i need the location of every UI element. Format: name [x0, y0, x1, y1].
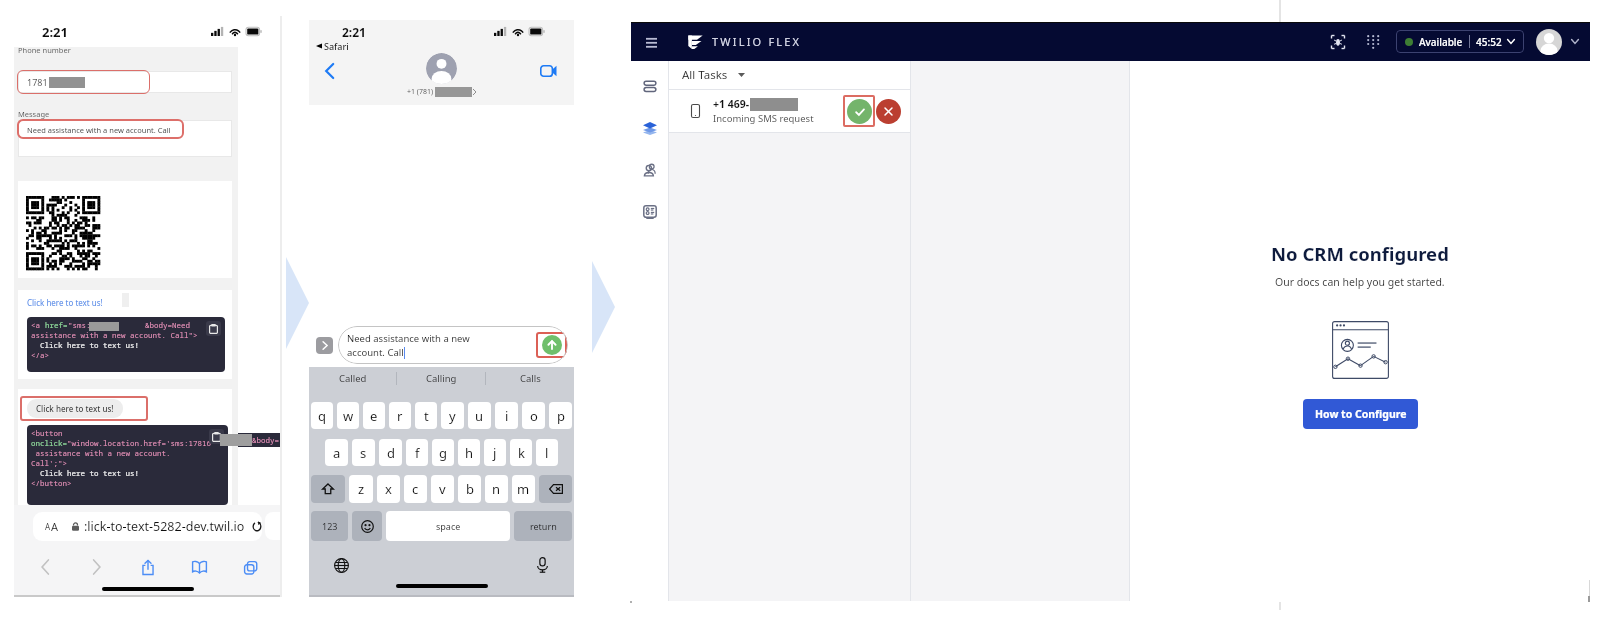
- button[interactable]: Copy: [206, 321, 221, 336]
- button[interactable]: d: [379, 439, 402, 466]
- button[interactable]: Accept task: [847, 99, 872, 124]
- staticText: c: [412, 480, 419, 498]
- button[interactable]: Apps: [316, 337, 333, 354]
- button[interactable]: Reject task: [876, 99, 901, 124]
- button[interactable]: 123: [311, 511, 348, 541]
- staticText: 45:52: [1476, 35, 1502, 49]
- button[interactable]: Back: [34, 557, 56, 577]
- staticText: q: [318, 407, 326, 425]
- button[interactable]: s: [352, 439, 375, 466]
- button[interactable]: Dialpad: [1362, 32, 1382, 52]
- staticText: w: [343, 407, 354, 425]
- button[interactable]: Backspace: [539, 475, 572, 503]
- staticText: o: [530, 407, 538, 425]
- staticText: u: [475, 407, 484, 425]
- button[interactable]: Account: [1536, 29, 1562, 55]
- staticText: k: [518, 444, 525, 462]
- staticText: All Tasks: [682, 67, 728, 83]
- staticText: onclick=: [31, 438, 67, 448]
- button[interactable]: All Tasks: [669, 61, 910, 89]
- button[interactable]: Menu: [641, 32, 661, 52]
- button[interactable]: Forward: [85, 557, 107, 577]
- button[interactable]: g: [432, 439, 454, 466]
- staticText: 1781: [27, 76, 48, 88]
- staticText: g: [439, 444, 447, 462]
- button[interactable]: p: [549, 402, 572, 429]
- staticText: Need assistance with a new account. Call: [27, 125, 171, 135]
- staticText: Available: [1419, 35, 1463, 49]
- button[interactable]: Share: [137, 557, 159, 577]
- button[interactable]: h: [458, 439, 480, 466]
- button[interactable]: Called: [309, 367, 396, 389]
- button[interactable]: y: [441, 402, 464, 429]
- staticText: y: [449, 407, 456, 425]
- staticText: p: [557, 407, 565, 425]
- staticText: </a>: [31, 350, 49, 360]
- staticText: b: [466, 480, 474, 498]
- button[interactable]: +1 469-: [669, 90, 910, 132]
- staticText: r: [397, 407, 403, 425]
- button[interactable]: z: [349, 475, 373, 503]
- staticText: <a: [31, 320, 45, 330]
- button[interactable]: w: [337, 402, 359, 429]
- button[interactable]: u: [468, 402, 491, 429]
- staticText: &body=Need: [145, 320, 190, 330]
- button[interactable]: e: [363, 402, 385, 429]
- button[interactable]: b: [458, 475, 481, 503]
- button[interactable]: Emoji: [352, 511, 382, 541]
- staticText: Click here to text us!: [36, 403, 114, 414]
- button[interactable]: m: [512, 475, 535, 503]
- button[interactable]: Queues: [638, 74, 662, 98]
- button[interactable]: r: [389, 402, 411, 429]
- staticText: A: [45, 521, 51, 532]
- button[interactable]: Send: [542, 335, 562, 355]
- staticText: e: [370, 407, 378, 425]
- button[interactable]: a: [325, 439, 348, 466]
- staticText: +1 (781): [407, 87, 434, 97]
- button[interactable]: c: [404, 475, 427, 503]
- staticText: d: [387, 444, 395, 462]
- staticText: Incoming SMS request: [713, 112, 814, 125]
- button[interactable]: Bookmarks: [188, 557, 210, 577]
- button[interactable]: j: [484, 439, 506, 466]
- button[interactable]: space: [386, 511, 510, 541]
- button[interactable]: f: [406, 439, 428, 466]
- button[interactable]: Calls: [486, 367, 574, 389]
- button[interactable]: o: [522, 402, 545, 429]
- button[interactable]: q: [311, 402, 333, 429]
- staticText: No CRM configured: [1271, 241, 1449, 266]
- button[interactable]: v: [431, 475, 454, 503]
- button[interactable]: Shift: [311, 475, 345, 503]
- button[interactable]: Dictate: [532, 555, 552, 575]
- staticText: h: [465, 444, 474, 462]
- staticText: x: [385, 480, 392, 498]
- staticText: j: [493, 444, 497, 462]
- staticText: "window.location.href='sms:17816: [67, 438, 211, 448]
- button[interactable]: Agents: [638, 158, 662, 182]
- button[interactable]: Tabs: [239, 557, 261, 577]
- button[interactable]: Language: [331, 555, 351, 575]
- staticText: s: [360, 444, 367, 462]
- button[interactable]: FaceTime: [537, 60, 559, 82]
- button[interactable]: Back: [321, 62, 339, 80]
- button[interactable]: Calling: [397, 367, 485, 389]
- staticText: t: [424, 407, 429, 425]
- staticText: Phone number: [18, 45, 71, 55]
- button[interactable]: return: [514, 511, 572, 541]
- button[interactable]: x: [377, 475, 400, 503]
- button[interactable]: i: [495, 402, 518, 429]
- button[interactable]: Available: [1396, 30, 1524, 53]
- button[interactable]: Tasks: [638, 116, 662, 140]
- button[interactable]: How to Configure: [1303, 399, 1418, 429]
- button[interactable]: l: [536, 439, 558, 466]
- staticText: "sms:17816: [68, 320, 113, 330]
- button[interactable]: k: [510, 439, 532, 466]
- button[interactable]: t: [415, 402, 437, 429]
- button[interactable]: n: [485, 475, 508, 503]
- button[interactable]: A: [33, 512, 262, 541]
- button[interactable]: Click here to text us!: [27, 399, 123, 418]
- button[interactable]: Dashboard: [638, 200, 662, 224]
- button[interactable]: Copy: [209, 429, 224, 444]
- staticText: Message: [18, 109, 50, 119]
- button[interactable]: Debugger: [1328, 32, 1348, 52]
